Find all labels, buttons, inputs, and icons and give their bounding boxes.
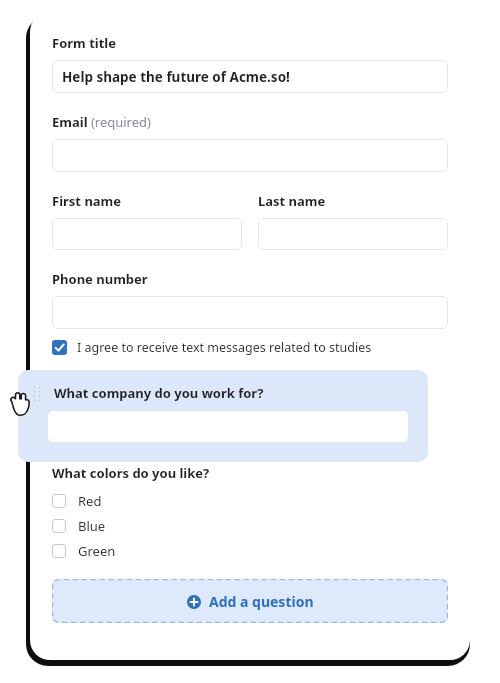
button[interactable]	[52, 139, 448, 172]
staticText: Red	[78, 492, 102, 510]
staticText: What company do you work for?	[54, 384, 264, 402]
button[interactable]: Drag to reorder	[18, 370, 428, 462]
button[interactable]	[52, 296, 448, 329]
staticText: Help shape the future of Acme.so!	[62, 68, 290, 86]
button[interactable]: Add a question	[52, 579, 448, 623]
staticText: Last name	[258, 192, 326, 210]
staticText: Email (required)	[52, 113, 151, 131]
button[interactable]: Green	[52, 538, 448, 563]
staticText: Green	[78, 542, 116, 560]
other: Drag to reorder	[32, 386, 42, 402]
button[interactable]: Help shape the future of Acme.so!	[52, 60, 448, 93]
staticText: I agree to receive text messages related…	[77, 339, 372, 356]
staticText: Phone number	[52, 270, 148, 288]
button[interactable]	[258, 218, 448, 250]
staticText: Add a question	[209, 592, 314, 611]
button[interactable]	[52, 218, 242, 250]
button[interactable]: I agree to receive text messages related…	[52, 339, 372, 356]
staticText: First name	[52, 192, 122, 210]
staticText: What colors do you like?	[52, 464, 210, 482]
button[interactable]: Red	[52, 488, 448, 513]
staticText: Form title	[52, 34, 116, 52]
button[interactable]: Blue	[52, 513, 448, 538]
staticText: Blue	[78, 517, 106, 535]
